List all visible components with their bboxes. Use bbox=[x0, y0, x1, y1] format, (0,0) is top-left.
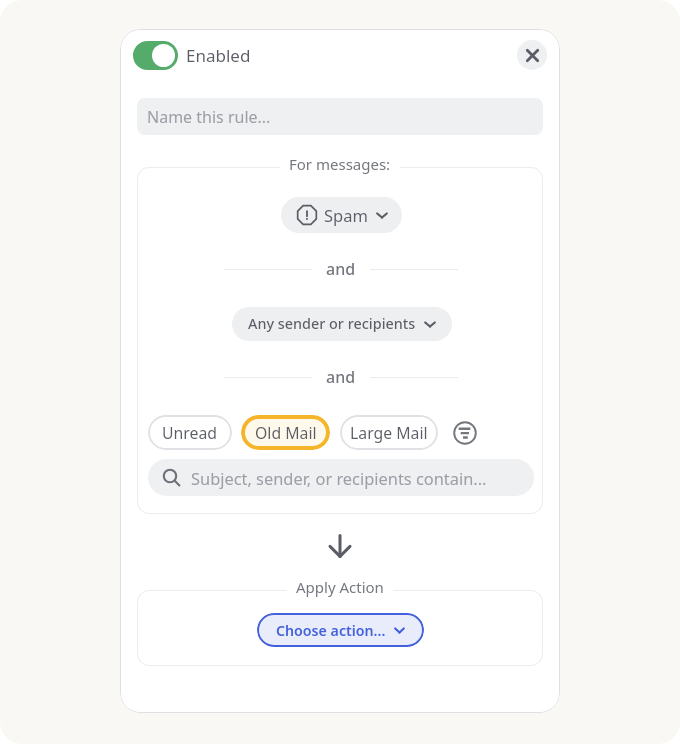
button[interactable]: Enabled toggle bbox=[133, 41, 178, 70]
button[interactable]: Spam bbox=[281, 197, 402, 233]
button[interactable]: Unread bbox=[148, 415, 232, 450]
staticText: Large Mail bbox=[350, 422, 428, 444]
button[interactable]: More filters bbox=[452, 420, 478, 446]
button[interactable]: Name this rule... bbox=[137, 98, 543, 135]
staticText: For messages: bbox=[289, 154, 391, 174]
staticText: Subject, sender, or recipients contain..… bbox=[191, 467, 487, 489]
button[interactable]: Any sender or recipients bbox=[232, 307, 452, 341]
staticText: Apply Action bbox=[296, 577, 384, 597]
button[interactable]: Large Mail bbox=[340, 415, 438, 450]
staticText: and bbox=[326, 258, 356, 280]
staticText: Old Mail bbox=[255, 422, 317, 444]
button[interactable]: Subject, sender, or recipients contain..… bbox=[148, 459, 534, 496]
staticText: Any sender or recipients bbox=[248, 314, 416, 334]
staticText: Spam bbox=[324, 204, 368, 226]
button[interactable]: Close bbox=[517, 40, 547, 70]
button[interactable]: Choose action... bbox=[257, 613, 424, 647]
staticText: Name this rule... bbox=[147, 106, 271, 128]
staticText: and bbox=[326, 366, 356, 388]
button[interactable]: Old Mail bbox=[241, 415, 330, 450]
staticText: Choose action... bbox=[276, 621, 386, 640]
staticText: Unread bbox=[162, 422, 218, 444]
staticText: Enabled bbox=[186, 44, 251, 67]
